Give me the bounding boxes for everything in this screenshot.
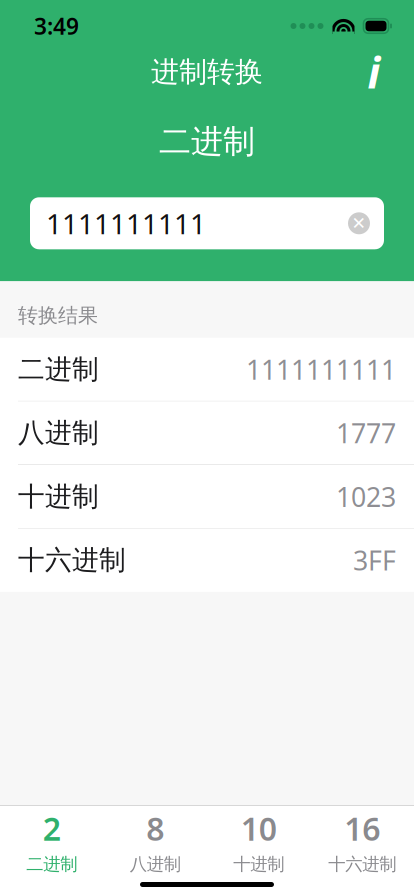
staticText: 1111111111 [46, 205, 206, 242]
staticText: 转换结果 [18, 303, 98, 328]
staticText: 1111111111 [246, 352, 396, 387]
staticText: 二进制 [159, 122, 255, 161]
staticText: 十进制 [18, 480, 99, 513]
staticText: i [367, 44, 380, 100]
button[interactable]: 2 [0, 812, 103, 870]
staticText: 8 [146, 807, 164, 850]
staticText: 二进制 [18, 353, 99, 386]
staticText: 十六进制 [328, 854, 396, 875]
button[interactable]: Clear text [342, 206, 376, 240]
staticText: 3FF [353, 542, 396, 578]
button[interactable]: 10 [207, 812, 310, 870]
button[interactable]: 8 [103, 812, 207, 870]
button[interactable]: 十六进制 [0, 529, 414, 592]
staticText: 八进制 [130, 854, 181, 875]
button[interactable]: 16 [310, 812, 414, 870]
staticText: 二进制 [26, 854, 77, 875]
staticText: 十六进制 [18, 544, 126, 577]
staticText: 八进制 [18, 417, 99, 449]
staticText: 10 [241, 807, 277, 850]
button[interactable]: Info [352, 50, 396, 94]
staticText: 1777 [336, 415, 396, 451]
staticText: 十进制 [233, 854, 284, 875]
staticText: 2 [43, 807, 61, 850]
staticText: 1023 [336, 479, 396, 514]
button[interactable]: 十进制 [0, 465, 414, 529]
staticText: 进制转换 [151, 55, 263, 89]
staticText: ✕ [351, 213, 366, 233]
button[interactable]: 二进制 [0, 338, 414, 401]
button[interactable]: 八进制 [0, 401, 414, 465]
staticText: 16 [344, 807, 380, 850]
staticText: 3:49 [34, 11, 79, 41]
